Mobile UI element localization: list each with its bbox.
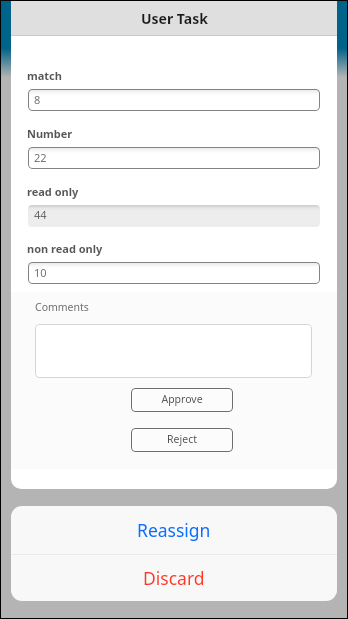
button[interactable]: Approve: [131, 388, 233, 412]
staticText: Approve: [161, 392, 203, 406]
staticText: match: [27, 68, 62, 83]
staticText: non read only: [27, 241, 103, 256]
staticText: Discard: [143, 566, 205, 590]
button[interactable]: [35, 324, 312, 378]
staticText: 44: [34, 207, 47, 222]
button[interactable]: 8: [28, 89, 320, 111]
staticText: Reassign: [137, 518, 211, 542]
staticText: Number: [27, 126, 73, 141]
staticText: 8: [34, 92, 41, 107]
staticText: 10: [34, 265, 47, 280]
button[interactable]: Reject: [131, 428, 233, 452]
staticText: Comments: [35, 300, 89, 314]
button[interactable]: User Task: [11, 1, 337, 36]
staticText: 22: [34, 150, 47, 165]
button[interactable]: 10: [28, 262, 320, 284]
staticText: read only: [27, 184, 79, 199]
button[interactable]: 22: [28, 147, 320, 169]
button[interactable]: 44: [28, 205, 320, 227]
button[interactable]: Reassign: [11, 506, 337, 554]
staticText: User Task: [141, 9, 208, 28]
button[interactable]: Discard: [11, 555, 337, 601]
staticText: Reject: [167, 432, 197, 446]
